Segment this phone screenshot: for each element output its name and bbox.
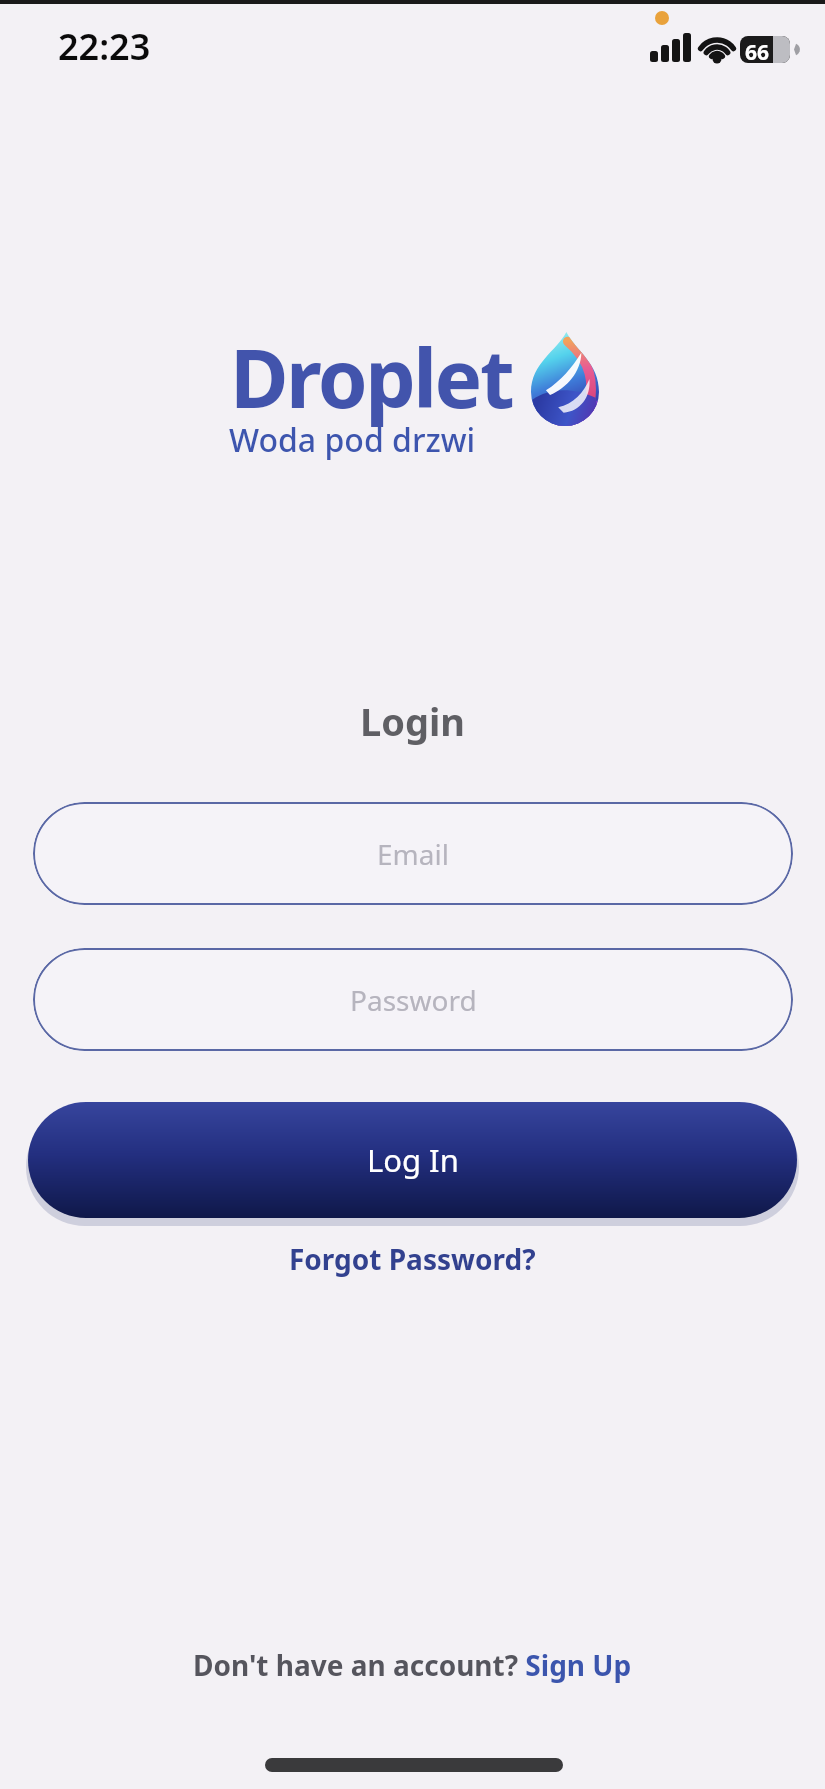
staticText: Email [377, 835, 449, 873]
staticText: 66 [745, 38, 770, 67]
staticText: Log In [367, 1139, 459, 1181]
staticText: Password [350, 981, 477, 1019]
button[interactable]: Password [33, 948, 793, 1051]
staticText: Droplet [230, 322, 513, 431]
staticText: Woda pod drzwi [229, 418, 476, 462]
button[interactable]: Don't have an account? Sign Up [193, 1646, 632, 1684]
button[interactable]: Forgot Password? [289, 1240, 536, 1278]
staticText: Login [0, 695, 825, 747]
button[interactable]: Log In [28, 1102, 797, 1218]
staticText: 22:23 [58, 22, 151, 71]
button[interactable]: Email [33, 802, 793, 905]
